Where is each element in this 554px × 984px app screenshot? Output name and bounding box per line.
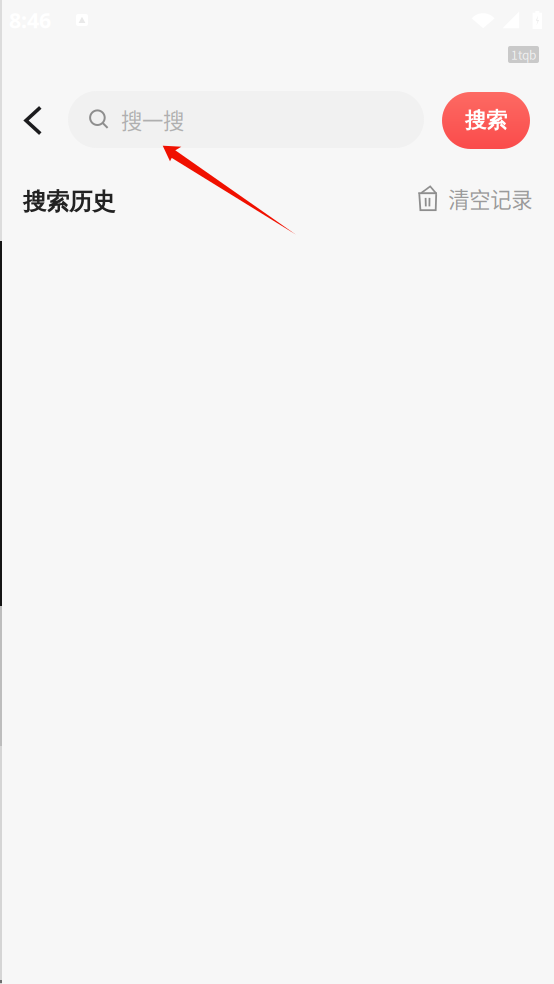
button[interactable]: 搜一搜 <box>68 91 424 148</box>
staticText: 搜一搜 <box>121 104 184 135</box>
staticText: 8:46 <box>9 5 51 35</box>
button[interactable]: Back <box>5 92 61 149</box>
button[interactable]: 搜索 <box>442 92 530 149</box>
staticText: 1tqb <box>511 46 536 63</box>
staticText: 搜索历史 <box>23 187 115 216</box>
staticText: 搜索 <box>465 107 507 134</box>
button[interactable]: 清空记录 <box>412 174 538 223</box>
staticText: 清空记录 <box>448 183 532 214</box>
